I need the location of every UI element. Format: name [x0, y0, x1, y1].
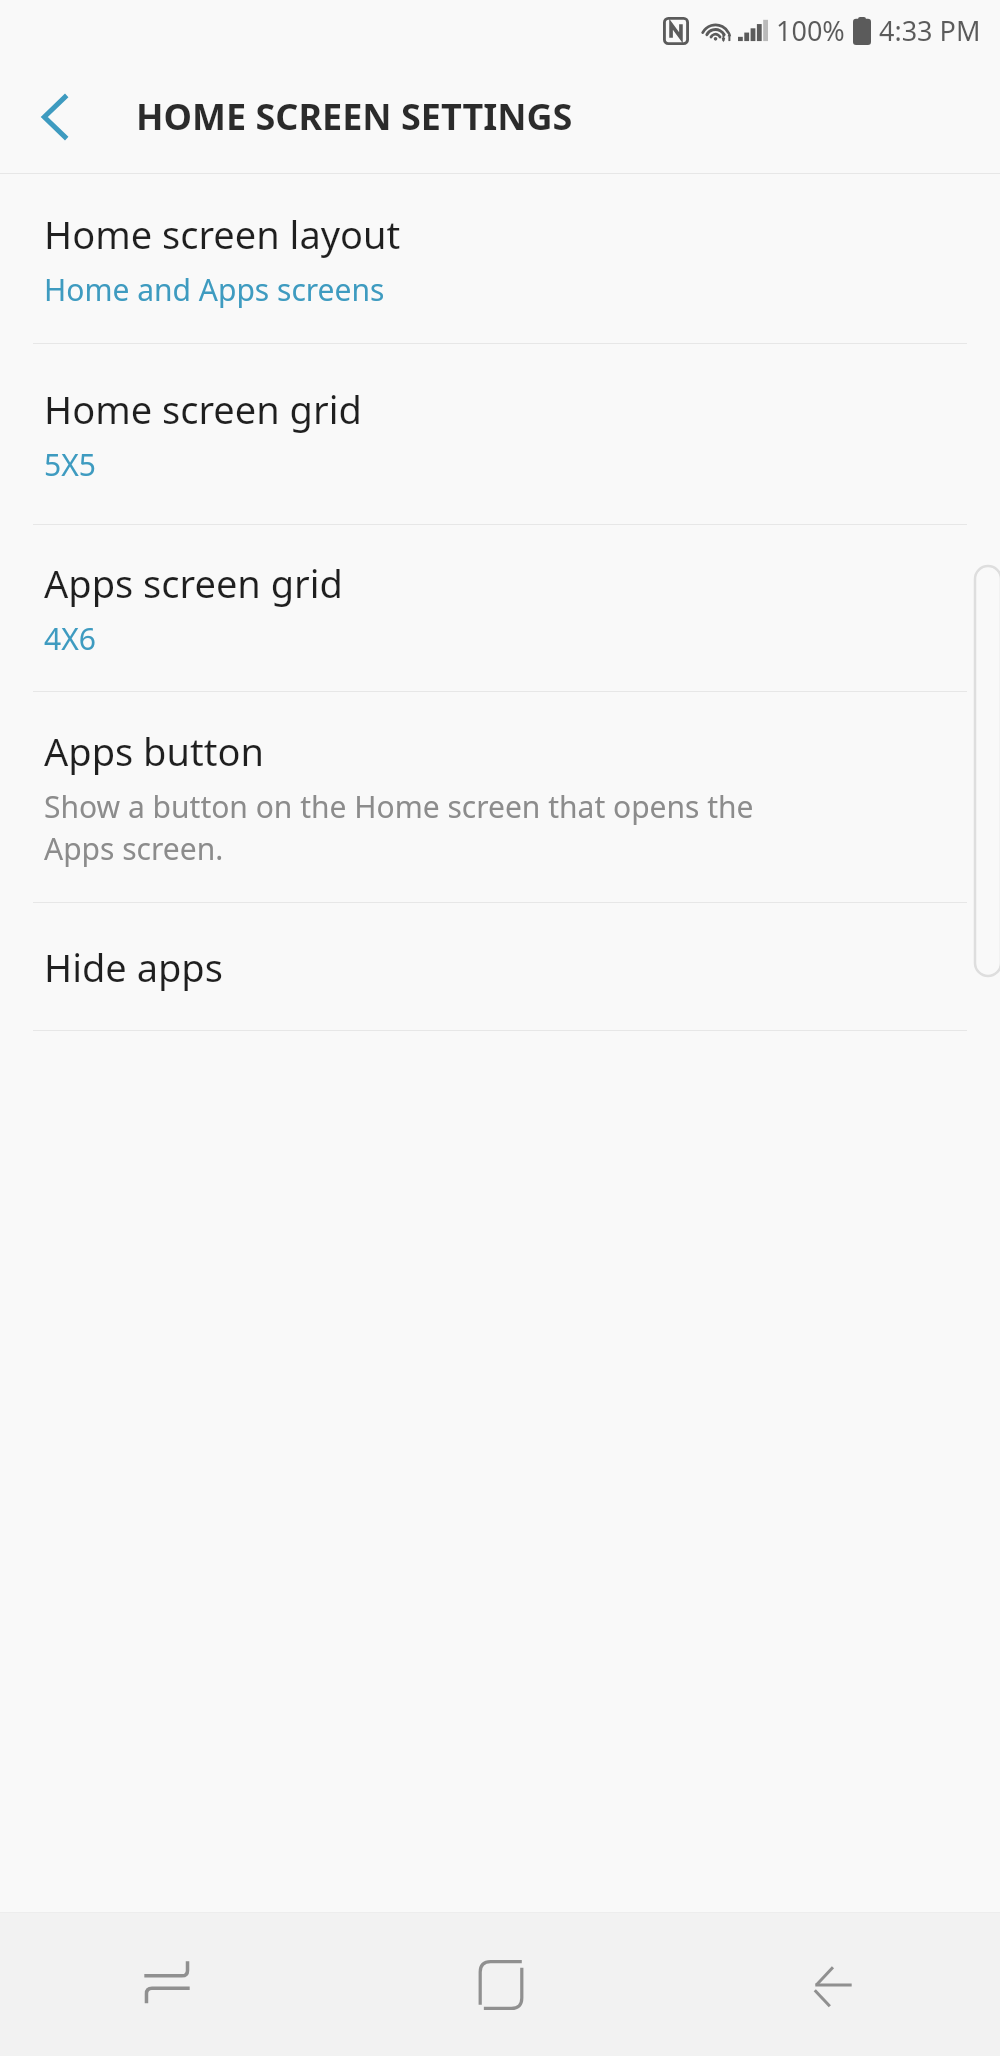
staticText: 4:33 PM — [879, 12, 981, 49]
button[interactable]: Recent apps — [0, 1913, 334, 2056]
button[interactable]: Apps button — [0, 692, 1000, 902]
staticText: HOME SCREEN SETTINGS — [136, 92, 573, 141]
staticText: Apps screen grid — [44, 557, 343, 609]
staticText: Home and Apps screens — [44, 269, 385, 310]
staticText: 5X5 — [44, 444, 96, 485]
button[interactable]: Home screen layout — [0, 174, 1000, 343]
staticText: 100% — [776, 12, 845, 49]
staticText: Home screen grid — [44, 383, 362, 435]
staticText: Apps button — [44, 725, 264, 777]
button[interactable]: Home screen grid — [0, 344, 1000, 524]
button[interactable]: Back — [667, 1913, 1000, 2056]
button[interactable]: Navigate up — [17, 79, 93, 155]
staticText: Show a button on the Home screen that op… — [44, 786, 754, 869]
button[interactable]: Apps screen grid — [0, 525, 1000, 691]
staticText: 4X6 — [44, 618, 96, 659]
staticText: Home screen layout — [44, 208, 401, 260]
button[interactable]: Hide apps — [0, 903, 1000, 1030]
button[interactable]: Home — [334, 1913, 667, 2056]
staticText: Hide apps — [44, 941, 223, 993]
